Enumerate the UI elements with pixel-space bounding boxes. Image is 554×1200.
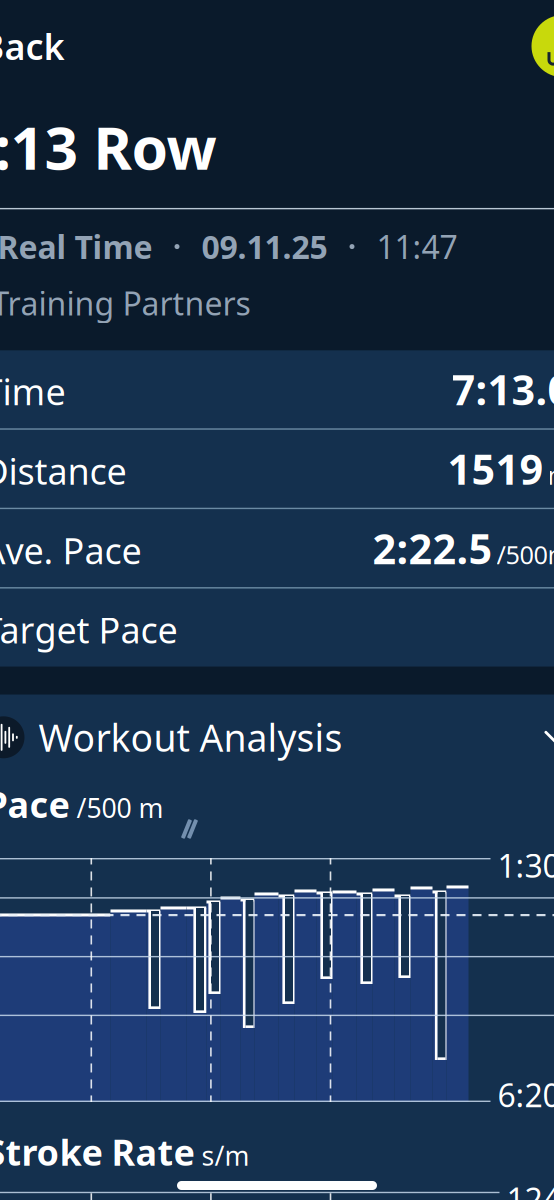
staticText: 2:22.5: [372, 521, 492, 576]
staticText: 1519: [447, 441, 543, 496]
button[interactable]: Workout Analysis: [0, 694, 554, 780]
staticText: Pace: [0, 780, 69, 828]
staticText: /500m: [496, 537, 554, 571]
button[interactable]: Back: [0, 12, 78, 80]
staticText: Stroke Rate: [0, 1128, 194, 1176]
staticText: Back: [0, 22, 64, 70]
staticText: Distance: [0, 447, 126, 495]
button[interactable]: Share workout: [531, 15, 554, 77]
staticText: 1:30: [497, 844, 554, 886]
button[interactable]: Training Partners: [0, 268, 554, 324]
staticText: 11:47: [376, 225, 457, 268]
staticText: s/m: [201, 1138, 249, 1173]
staticText: Time: [0, 367, 65, 415]
staticText: Workout Analysis: [38, 712, 342, 762]
staticText: 7:13.0: [451, 362, 554, 417]
staticText: 09.11.25: [201, 225, 327, 268]
staticText: 124: [506, 1178, 554, 1200]
staticText: Target Pace: [0, 606, 177, 653]
staticText: Training Partners: [0, 282, 250, 324]
staticText: /500 m: [76, 790, 163, 825]
staticText: 6:20: [497, 1073, 554, 1116]
staticText: Ave. Pace: [0, 526, 141, 574]
staticText: m: [547, 458, 554, 492]
staticText: 7:13 Row: [0, 108, 216, 186]
staticText: Real Time: [0, 225, 152, 268]
